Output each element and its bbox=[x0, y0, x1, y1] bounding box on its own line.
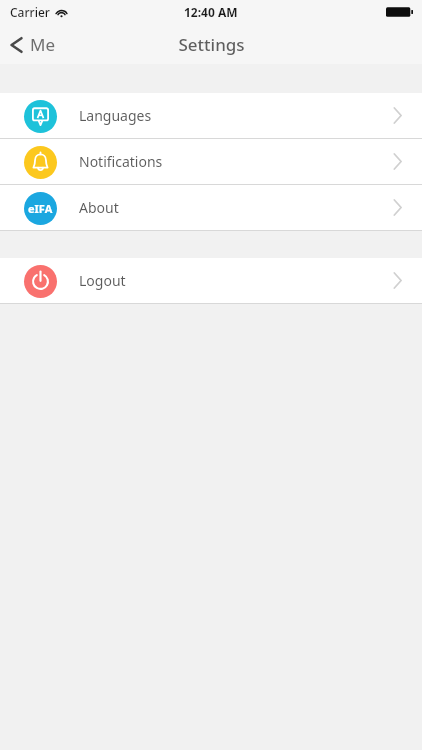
staticText: Logout bbox=[79, 271, 126, 290]
staticText: Carrier bbox=[10, 4, 50, 20]
staticText: About bbox=[79, 198, 119, 217]
staticText: Settings bbox=[178, 33, 245, 56]
staticText: Me bbox=[30, 33, 56, 56]
staticText: Notifications bbox=[79, 152, 163, 171]
staticText: 12:40 AM bbox=[184, 4, 238, 20]
staticText: eIFA bbox=[28, 201, 53, 216]
button[interactable]: eIFA bbox=[0, 185, 422, 230]
button[interactable]: Me bbox=[0, 27, 68, 62]
button[interactable]: Notifications bbox=[0, 139, 422, 184]
staticText: Languages bbox=[79, 106, 152, 125]
button[interactable]: Logout bbox=[0, 258, 422, 303]
button[interactable]: Languages bbox=[0, 93, 422, 138]
